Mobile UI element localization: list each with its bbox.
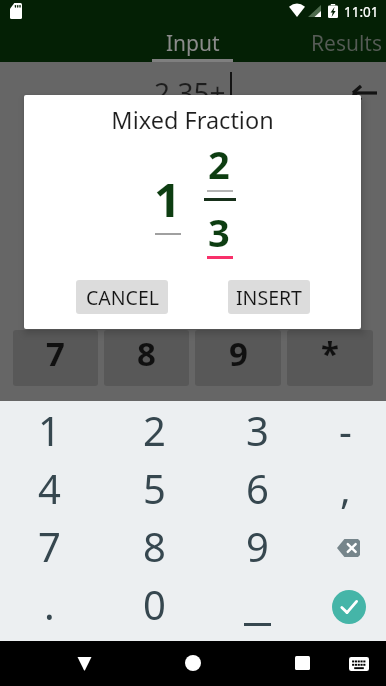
button[interactable]: INSERT [228,280,310,314]
button[interactable]: Recent apps [281,643,321,683]
staticText: Results [311,29,383,58]
button[interactable]: Backspace [345,70,385,106]
staticText: 6 [246,461,269,515]
staticText: . [44,577,55,631]
button[interactable]: Backspace [305,517,386,575]
staticText: 7 [38,519,61,573]
button[interactable]: 6 [210,459,305,517]
button[interactable]: * [287,330,373,386]
button[interactable]: 9 [210,517,305,575]
button[interactable]: 5 [99,459,210,517]
button[interactable]: 2 [99,401,210,459]
button[interactable]: 7 [0,517,99,575]
button[interactable]: 8 [104,330,189,386]
staticText: , [340,461,351,515]
button[interactable]: CANCEL [76,280,168,314]
staticText: 5 [143,461,166,515]
button[interactable]: 1 [0,401,99,459]
staticText: 2.35+ [154,73,226,111]
staticText: 1 [154,167,181,231]
staticText: 7 [46,331,65,376]
other: Done [332,590,366,624]
button[interactable]: Switch keyboard [338,644,378,684]
staticText: * [321,331,339,376]
button[interactable]: Home [173,643,213,683]
staticText: Mixed Fraction [24,104,361,136]
button[interactable]: 0 [99,575,210,633]
staticText: 9 [246,519,269,573]
button[interactable]: 4 [0,459,99,517]
button[interactable]: Input [152,25,233,62]
staticText: 0 [143,577,166,631]
button[interactable]: . [0,575,99,633]
staticText: 2 [143,403,166,457]
staticText: INSERT [236,284,302,311]
button[interactable]: Results [311,25,386,62]
button[interactable]: , [305,459,386,517]
staticText: 8 [143,519,166,573]
button[interactable]: 8 [99,517,210,575]
staticText: 9 [229,331,248,376]
staticText: - [339,403,352,457]
staticText: 8 [137,331,156,376]
button[interactable]: Done [305,575,386,633]
staticText: Input [166,29,220,58]
staticText: 4 [38,461,61,515]
staticText: CANCEL [86,284,159,311]
button[interactable]: - [305,401,386,459]
staticText: 3 [208,206,230,258]
button[interactable]: 7 [13,330,98,386]
staticText: 11:01 [344,3,379,21]
staticText: 1 [38,403,61,457]
staticText: 2 [208,138,230,190]
button[interactable]: 9 [195,330,281,386]
button[interactable]: Back [64,643,104,683]
other: Backspace [328,528,364,564]
staticText: 3 [246,403,269,457]
button[interactable] [210,575,305,633]
button[interactable]: 3 [210,401,305,459]
